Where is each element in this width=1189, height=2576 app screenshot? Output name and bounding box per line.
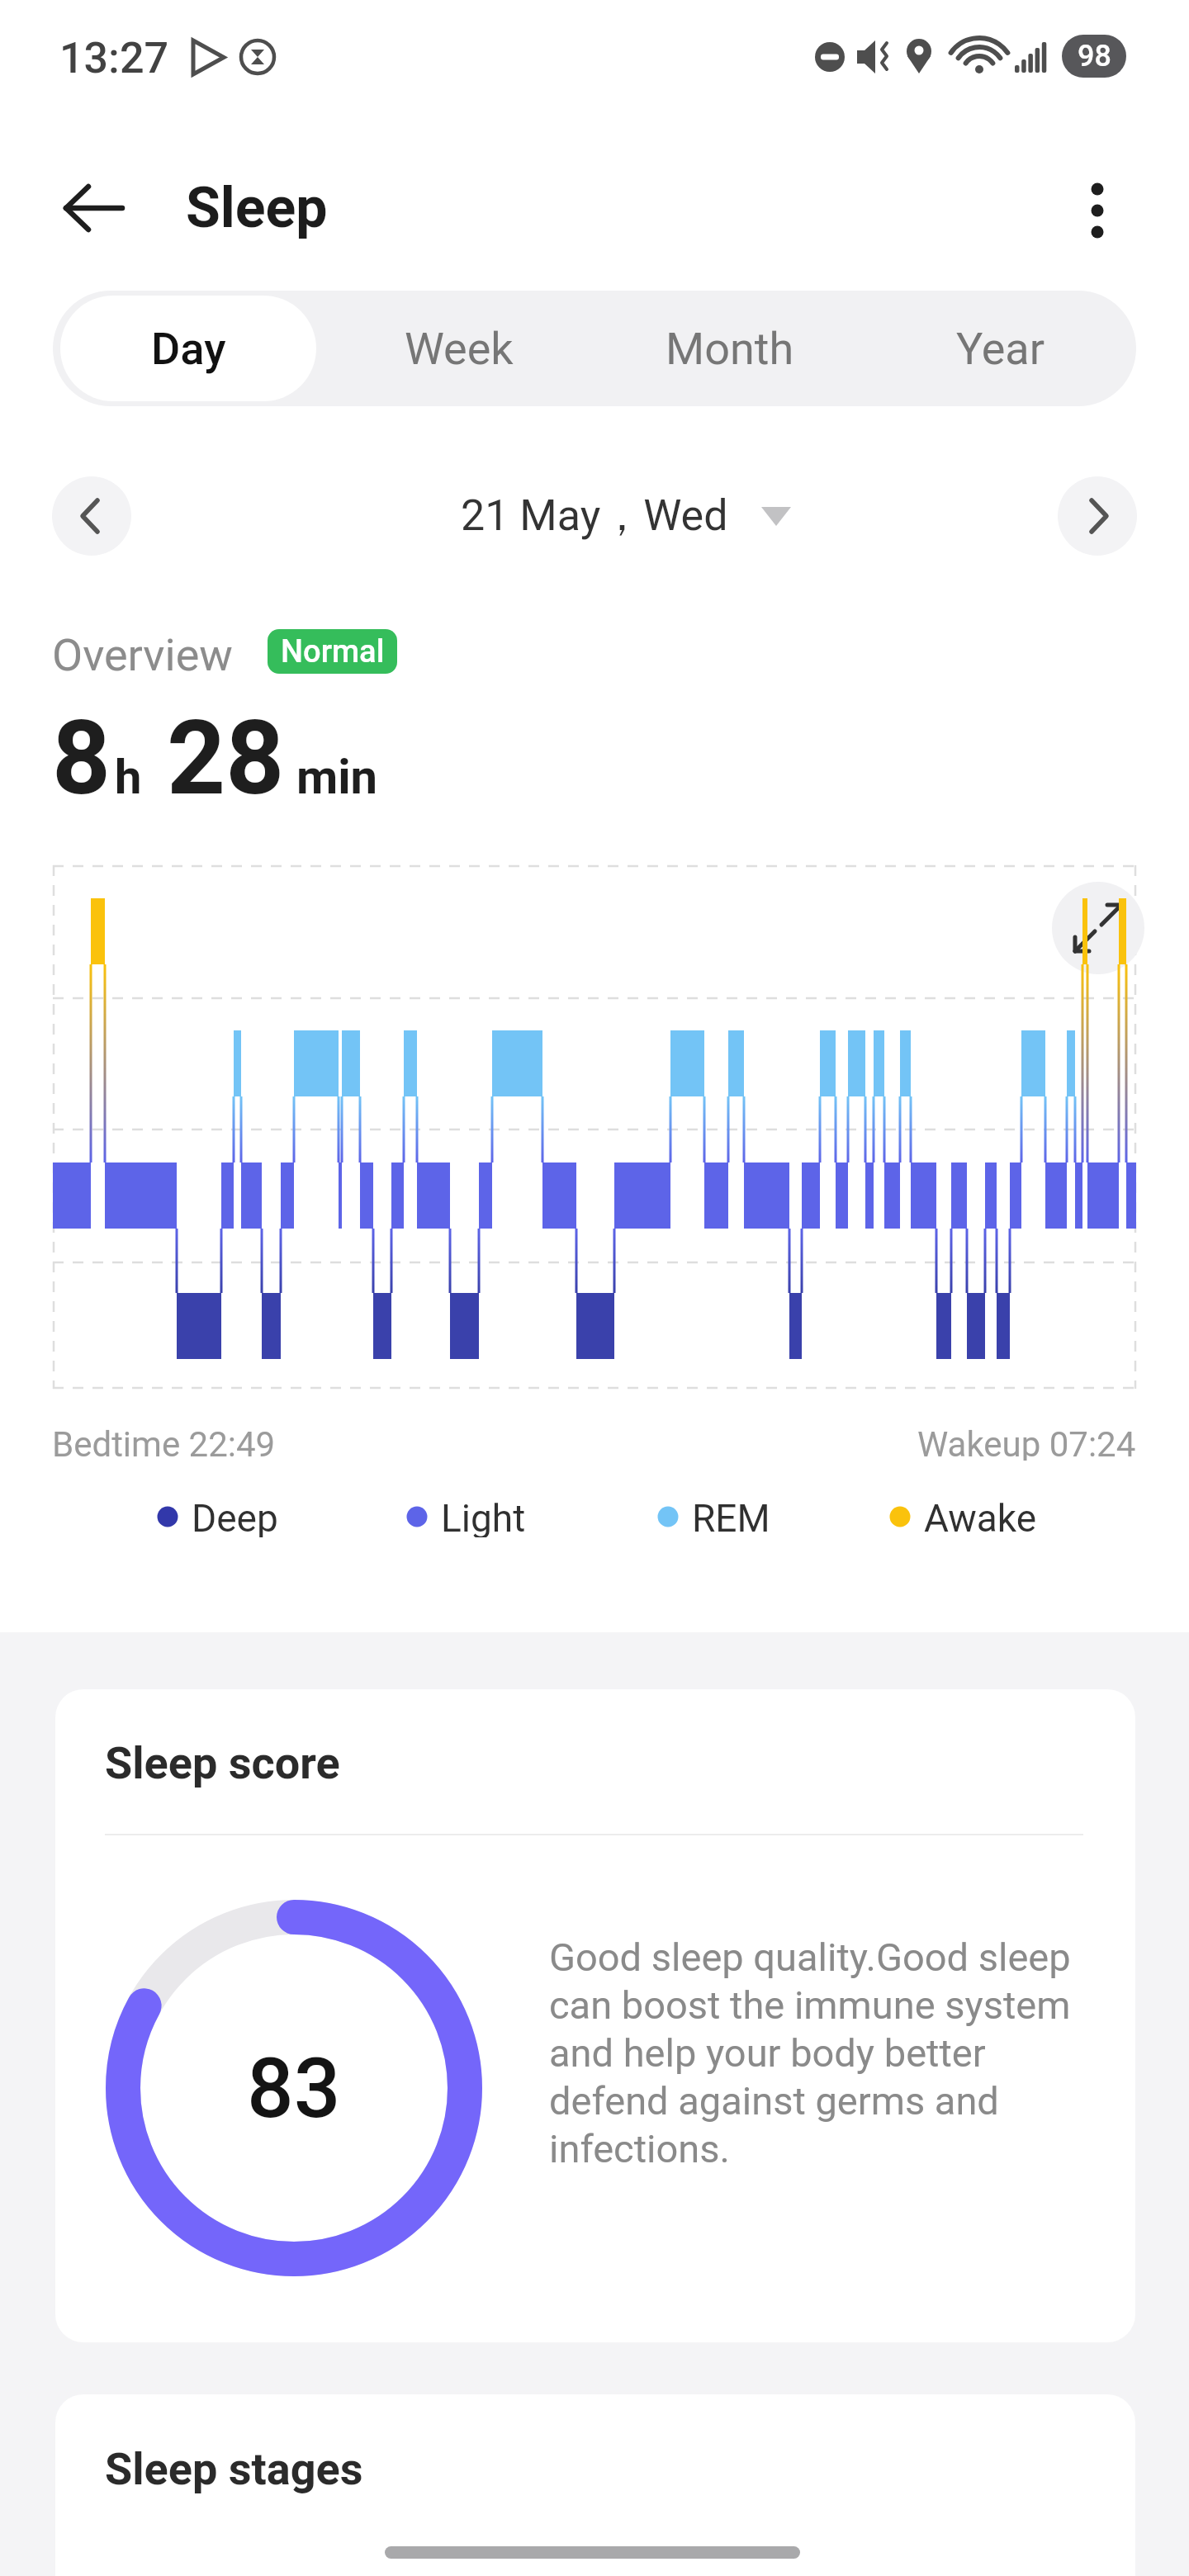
staticText: 28: [167, 698, 285, 818]
button[interactable]: Light: [406, 1496, 526, 1537]
staticText: Wakeup 07:24: [917, 1424, 1136, 1461]
staticText: 8: [52, 698, 111, 818]
staticText: Bedtime 22:49: [52, 1424, 276, 1461]
button[interactable]: REM: [657, 1496, 770, 1537]
button[interactable]: [52, 476, 131, 556]
staticText: Good sleep quality.Good sleep can boost …: [549, 1934, 1071, 2171]
staticText: Year: [956, 323, 1045, 375]
button[interactable]: [1052, 882, 1144, 974]
button[interactable]: [1058, 476, 1137, 556]
staticText: min: [296, 749, 378, 805]
button[interactable]: Day: [53, 291, 324, 406]
button[interactable]: [56, 178, 132, 239]
button[interactable]: 21 May，Wed: [0, 476, 1189, 556]
button[interactable]: Year: [865, 291, 1136, 406]
staticText: 98: [1078, 39, 1111, 73]
button[interactable]: [55, 1689, 1135, 2342]
staticText: Sleep score: [105, 1737, 340, 1789]
button[interactable]: Normal: [268, 629, 397, 674]
button[interactable]: Awake: [889, 1496, 1037, 1537]
button[interactable]: [1073, 170, 1123, 246]
staticText: Awake: [924, 1496, 1037, 1537]
staticText: Normal: [281, 633, 385, 670]
button[interactable]: Week: [324, 291, 594, 406]
button[interactable]: [55, 2394, 1135, 2576]
staticText: REM: [692, 1496, 770, 1537]
staticText: Month: [666, 323, 794, 375]
staticText: 13:27: [59, 33, 169, 79]
button[interactable]: Deep: [157, 1496, 278, 1537]
staticText: Light: [441, 1496, 526, 1537]
staticText: Sleep stages: [105, 2443, 363, 2495]
staticText: Deep: [192, 1496, 278, 1537]
staticText: Week: [405, 323, 514, 375]
staticText: 21 May，Wed: [461, 489, 728, 543]
staticText: 83: [247, 2040, 341, 2137]
staticText: h: [115, 749, 142, 805]
staticText: Overview: [52, 629, 233, 677]
button[interactable]: Month: [594, 291, 865, 406]
staticText: Day: [151, 323, 226, 375]
staticText: Sleep: [186, 175, 328, 241]
